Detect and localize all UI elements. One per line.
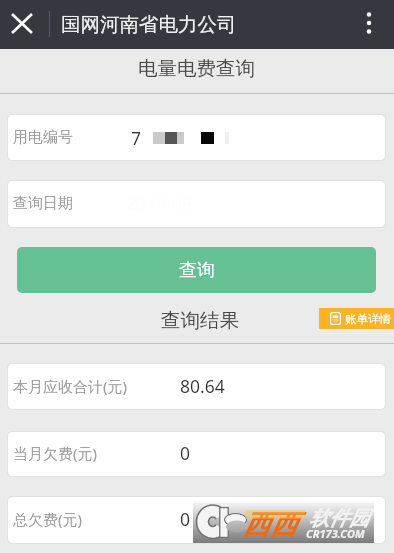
staticText: 当月欠费(元): [13, 443, 98, 463]
staticText: 0: [180, 507, 191, 531]
staticText: 0: [180, 441, 191, 465]
button[interactable]: 当月欠费(元): [8, 432, 385, 476]
staticText: 80.64: [180, 374, 225, 398]
button[interactable]: 总欠费(元): [8, 497, 385, 543]
staticText: 查询结果: [161, 308, 239, 333]
staticText: 用电编号: [13, 128, 73, 147]
button[interactable]: 查询: [17, 247, 376, 293]
button[interactable]: More options: [347, 1, 391, 45]
staticText: 查询: [179, 259, 215, 282]
button[interactable]: Close: [0, 1, 44, 45]
staticText: 电量电费查询: [138, 56, 255, 81]
button[interactable]: 查询日期: [8, 181, 385, 227]
button[interactable]: 用电编号: [8, 115, 385, 160]
staticText: 7: [131, 126, 142, 150]
staticText: 总欠费(元): [13, 509, 83, 529]
button[interactable]: 账单详情: [319, 308, 394, 329]
staticText: 查询日期: [13, 194, 73, 213]
staticText: 账单详情: [345, 312, 391, 326]
staticText: 国网河南省电力公司: [61, 12, 237, 37]
staticText: 本月应收合计(元): [13, 376, 128, 396]
button[interactable]: 本月应收合计(元): [8, 364, 385, 409]
staticText: 西西: [243, 508, 297, 542]
staticText: CR173.COM: [306, 526, 365, 541]
staticText: 软件园: [309, 506, 369, 531]
